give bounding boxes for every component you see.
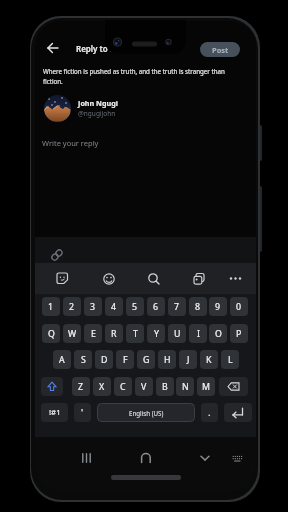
staticText: fiction. bbox=[43, 77, 63, 85]
staticText: Q bbox=[48, 328, 55, 340]
button[interactable]: D bbox=[95, 350, 113, 369]
button[interactable]: Z bbox=[72, 377, 90, 396]
staticText: Z bbox=[78, 381, 84, 393]
staticText: . bbox=[208, 406, 211, 419]
button[interactable]: 6 bbox=[147, 297, 165, 316]
button[interactable]: A bbox=[53, 350, 71, 369]
button[interactable]: H bbox=[158, 350, 176, 369]
button[interactable]: 4 bbox=[105, 297, 123, 316]
button[interactable]: 5 bbox=[126, 297, 144, 316]
button[interactable]: W bbox=[63, 324, 81, 343]
staticText: E bbox=[91, 328, 96, 340]
staticText: V bbox=[141, 381, 147, 393]
button[interactable]: 9 bbox=[209, 297, 227, 316]
button[interactable]: C bbox=[114, 377, 132, 396]
staticText: L bbox=[228, 354, 233, 366]
staticText: S bbox=[81, 354, 86, 366]
button[interactable] bbox=[81, 453, 92, 463]
button[interactable]: . bbox=[201, 403, 218, 422]
button[interactable] bbox=[219, 377, 248, 396]
staticText: T bbox=[133, 328, 138, 340]
button[interactable]: O bbox=[209, 324, 227, 343]
button[interactable]: B bbox=[156, 377, 174, 396]
staticText: O bbox=[215, 328, 222, 340]
button[interactable]: 7 bbox=[168, 297, 186, 316]
button[interactable] bbox=[41, 377, 63, 396]
button[interactable] bbox=[57, 273, 69, 285]
button[interactable]: English (US) bbox=[97, 403, 195, 422]
staticText: P bbox=[236, 328, 242, 340]
staticText: W bbox=[68, 328, 77, 340]
button[interactable] bbox=[49, 247, 65, 263]
button[interactable] bbox=[43, 38, 63, 58]
staticText: D bbox=[101, 354, 108, 366]
staticText: M bbox=[202, 381, 210, 393]
staticText: U bbox=[174, 328, 181, 340]
staticText: 9 bbox=[215, 301, 221, 313]
button[interactable] bbox=[200, 455, 210, 462]
staticText: 4 bbox=[111, 301, 117, 313]
staticText: A bbox=[59, 354, 65, 366]
staticText: 2 bbox=[69, 301, 75, 313]
staticText: John Ngugi bbox=[78, 98, 118, 108]
button[interactable]: ' bbox=[74, 403, 91, 422]
button[interactable]: Y bbox=[147, 324, 165, 343]
staticText: 3 bbox=[90, 301, 96, 313]
staticText: X bbox=[99, 381, 105, 393]
staticText: C bbox=[120, 381, 126, 393]
staticText: R bbox=[111, 328, 117, 340]
staticText: !#1 bbox=[49, 407, 61, 418]
button[interactable] bbox=[148, 273, 160, 285]
staticText: N bbox=[182, 381, 189, 393]
button[interactable]: S bbox=[74, 350, 92, 369]
staticText: 8 bbox=[195, 301, 201, 313]
staticText: 7 bbox=[174, 301, 180, 313]
button[interactable] bbox=[224, 403, 252, 422]
button[interactable]: Write your reply bbox=[35, 129, 256, 224]
button[interactable]: 3 bbox=[84, 297, 102, 316]
button[interactable] bbox=[229, 275, 242, 282]
button[interactable]: M bbox=[197, 377, 215, 396]
button[interactable] bbox=[232, 455, 243, 463]
button[interactable]: N bbox=[176, 377, 194, 396]
staticText: 0 bbox=[236, 301, 242, 313]
button[interactable]: 8 bbox=[189, 297, 207, 316]
button[interactable]: J bbox=[179, 350, 197, 369]
button[interactable]: E bbox=[84, 324, 102, 343]
staticText: Reply to Evgec bbox=[76, 43, 133, 54]
button[interactable]: 0 bbox=[230, 297, 248, 316]
button[interactable] bbox=[140, 453, 152, 463]
button[interactable] bbox=[103, 273, 115, 285]
button[interactable]: U bbox=[168, 324, 186, 343]
staticText: H bbox=[164, 354, 171, 366]
button[interactable]: G bbox=[137, 350, 155, 369]
button[interactable]: L bbox=[221, 350, 239, 369]
button[interactable]: K bbox=[200, 350, 218, 369]
staticText: @ngugijohn bbox=[78, 109, 116, 118]
button[interactable]: F bbox=[116, 350, 134, 369]
staticText: K bbox=[206, 354, 212, 366]
button[interactable]: R bbox=[105, 324, 123, 343]
button[interactable]: !#1 bbox=[41, 403, 68, 422]
staticText: B bbox=[162, 381, 168, 393]
staticText: Post bbox=[212, 45, 229, 55]
staticText: English (US) bbox=[129, 409, 164, 417]
staticText: 1 bbox=[48, 301, 54, 313]
button[interactable]: 2 bbox=[63, 297, 81, 316]
staticText: Where fiction is pushed as truth, and th… bbox=[43, 67, 225, 75]
button[interactable]: T bbox=[126, 324, 144, 343]
button[interactable]: X bbox=[93, 377, 111, 396]
button[interactable]: 1 bbox=[42, 297, 60, 316]
staticText: J bbox=[187, 354, 190, 366]
button[interactable]: P bbox=[230, 324, 248, 343]
button[interactable]: Q bbox=[42, 324, 60, 343]
button[interactable] bbox=[193, 273, 205, 285]
staticText: Write your reply bbox=[42, 138, 99, 148]
button[interactable]: I bbox=[189, 324, 207, 343]
button[interactable]: Post bbox=[200, 42, 240, 57]
button[interactable]: V bbox=[135, 377, 153, 396]
staticText: ' bbox=[81, 406, 84, 419]
staticText: Y bbox=[154, 328, 159, 340]
staticText: 5 bbox=[132, 301, 138, 313]
staticText: 6 bbox=[153, 301, 159, 313]
